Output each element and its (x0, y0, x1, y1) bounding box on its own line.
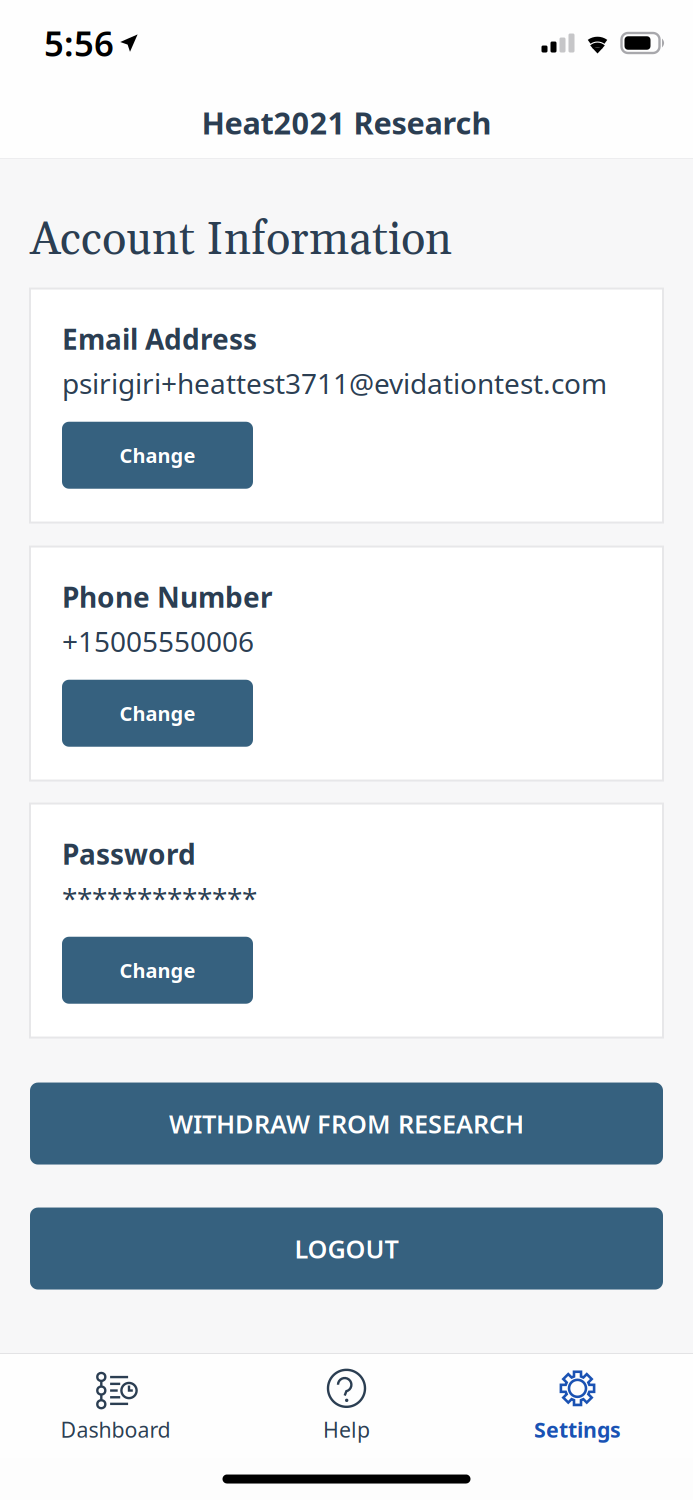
button[interactable]: Change Password (62, 937, 253, 1004)
button[interactable]: WITHDRAW FROM RESEARCH (30, 1083, 663, 1165)
staticText: +15005550006 (62, 623, 254, 660)
staticText: Settings (534, 1415, 621, 1444)
button[interactable]: Help (231, 1356, 462, 1456)
staticText: Email Address (62, 320, 257, 358)
button[interactable]: Change Email Address (62, 422, 253, 489)
staticText: Help (323, 1415, 370, 1444)
staticText: psirigiri+heattest3711@evidationtest.com (62, 365, 607, 402)
staticText: Change (119, 700, 195, 727)
button[interactable]: Settings (462, 1356, 693, 1456)
button[interactable]: Dashboard (0, 1356, 231, 1456)
staticText: Dashboard (60, 1415, 170, 1444)
staticText: Heat2021 Research (201, 102, 491, 143)
staticText: Account Information (30, 212, 452, 270)
staticText: Phone Number (62, 578, 273, 616)
staticText: Change (119, 957, 195, 984)
button[interactable]: Change Phone Number (62, 680, 253, 747)
staticText: 5:56 (44, 20, 114, 66)
staticText: Change (119, 442, 195, 469)
staticText: LOGOUT (294, 1232, 398, 1265)
button[interactable]: LOGOUT (30, 1208, 663, 1290)
staticText: Password (62, 835, 196, 873)
staticText: ************* (62, 880, 257, 917)
staticText: WITHDRAW FROM RESEARCH (169, 1107, 524, 1140)
